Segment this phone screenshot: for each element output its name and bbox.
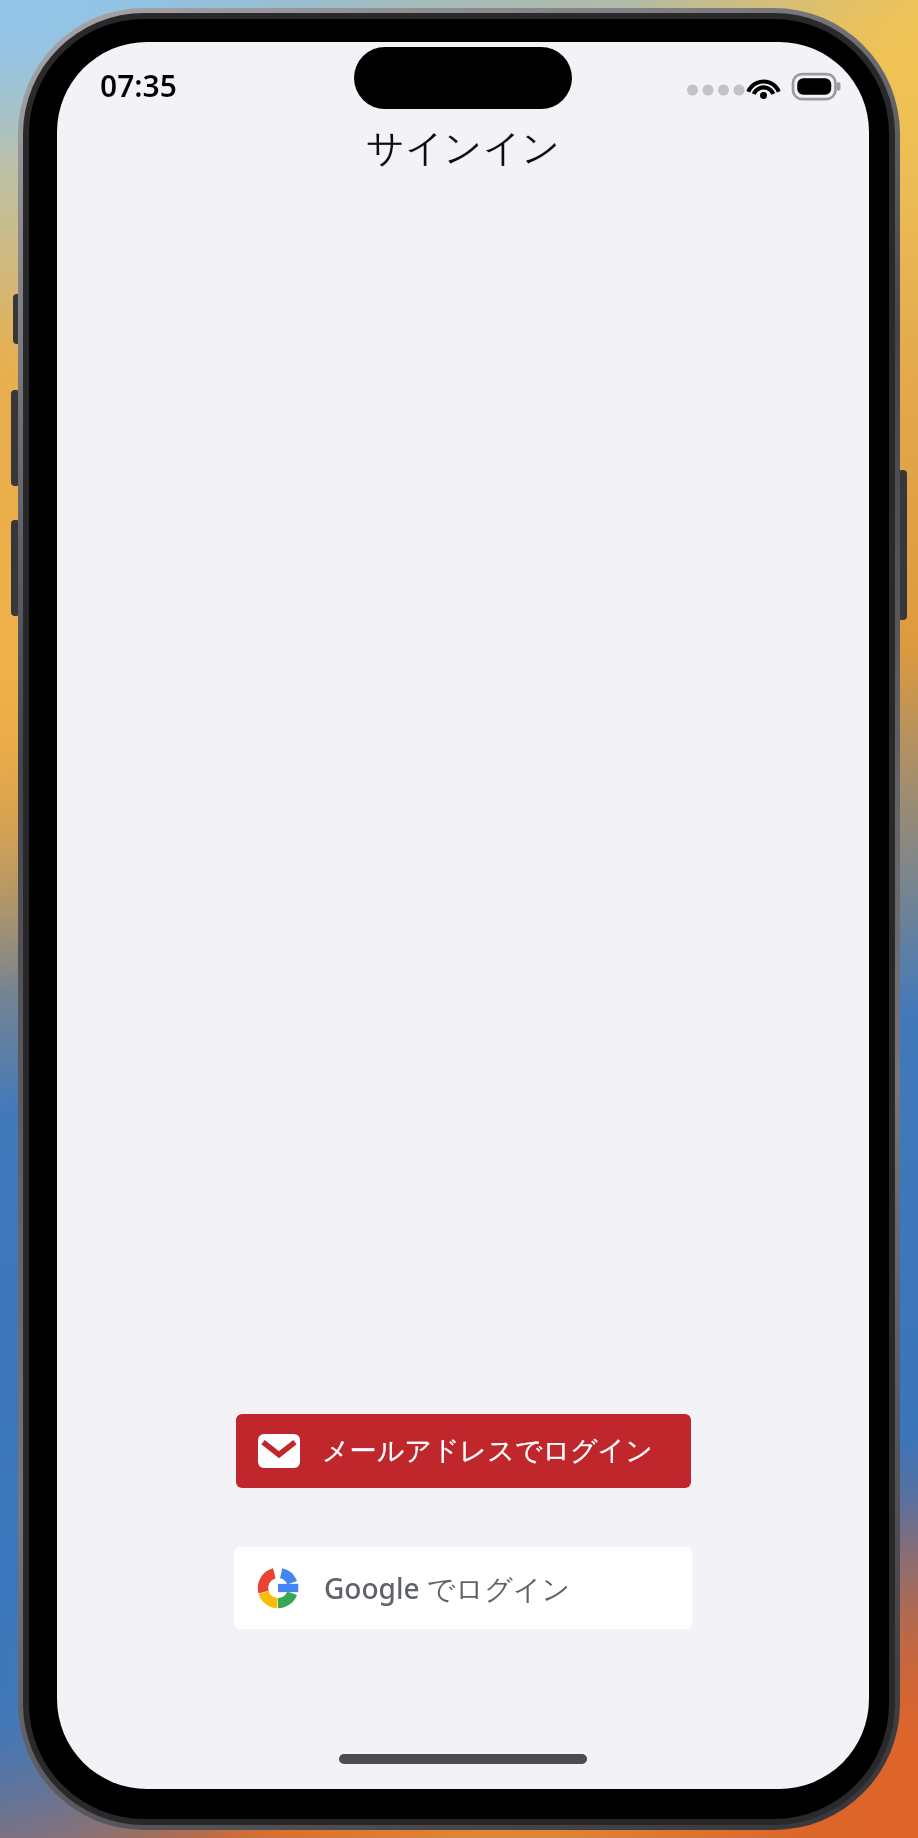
staticText: サインイン (57, 124, 869, 172)
staticText: 07:35 (100, 65, 177, 106)
button[interactable]: Google でログイン (234, 1547, 692, 1629)
button[interactable]: メールアドレスでログイン (236, 1414, 691, 1488)
staticText: Google でログイン (324, 1569, 571, 1607)
staticText: メールアドレスでログイン (322, 1434, 653, 1468)
